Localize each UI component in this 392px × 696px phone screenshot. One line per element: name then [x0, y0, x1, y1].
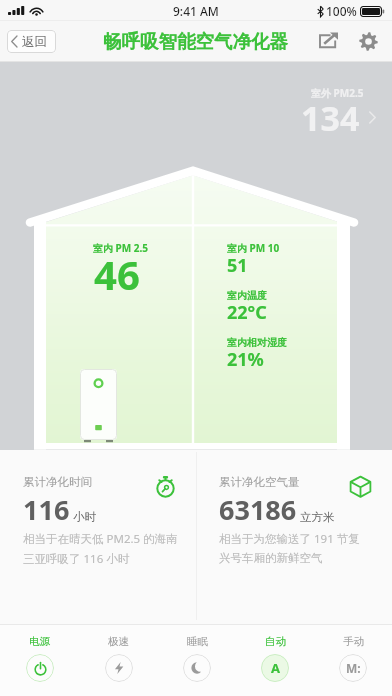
- staticText: 116: [23, 491, 70, 528]
- staticText: 室内 PM 10: [227, 241, 280, 255]
- staticText: M:: [346, 660, 361, 676]
- staticText: 累计净化空气量: [219, 475, 300, 489]
- button[interactable]: 累计净化时间: [0, 450, 196, 624]
- staticText: 63186: [219, 491, 297, 528]
- staticText: 自动: [265, 635, 286, 648]
- staticText: 46: [94, 247, 140, 301]
- staticText: 睡眠: [187, 635, 208, 648]
- staticText: 立方米: [300, 510, 335, 524]
- staticText: 134: [301, 95, 360, 141]
- staticText: 9:41 AM: [173, 3, 219, 19]
- staticText: 相当于为您输送了 191 节复 兴号车厢的新鲜空气: [219, 531, 360, 565]
- staticText: 极速: [108, 635, 129, 648]
- button[interactable]: 自动: [236, 625, 314, 696]
- staticText: 室内温度: [227, 289, 267, 302]
- staticText: 返回: [22, 34, 47, 50]
- staticText: 21%: [227, 347, 264, 372]
- staticText: 相当于在晴天低 PM2.5 的海南 三亚呼吸了 116 小时: [23, 531, 178, 566]
- button[interactable]: 手动: [314, 625, 392, 696]
- staticText: A: [271, 659, 280, 677]
- staticText: 畅呼吸智能空气净化器: [103, 30, 288, 53]
- button[interactable]: 返回: [7, 30, 56, 53]
- button[interactable]: 睡眠: [158, 625, 236, 696]
- staticText: 手动: [343, 635, 364, 648]
- button[interactable]: 室外 PM2.5: [292, 62, 392, 142]
- staticText: 电源: [29, 635, 50, 648]
- staticText: 室外 PM2.5: [311, 86, 364, 100]
- staticText: 51: [227, 253, 248, 278]
- staticText: 室内 PM 2.5: [93, 241, 149, 255]
- button[interactable]: 极速: [79, 625, 158, 696]
- staticText: 室内相对湿度: [227, 336, 287, 349]
- staticText: 22°C: [227, 300, 267, 325]
- staticText: 小时: [73, 510, 96, 524]
- button[interactable]: Settings: [349, 21, 387, 62]
- button[interactable]: Share: [310, 21, 350, 62]
- button[interactable]: 电源: [0, 625, 79, 696]
- staticText: 累计净化时间: [23, 475, 92, 489]
- staticText: 100%: [326, 3, 357, 19]
- button[interactable]: 累计净化空气量: [196, 450, 392, 624]
